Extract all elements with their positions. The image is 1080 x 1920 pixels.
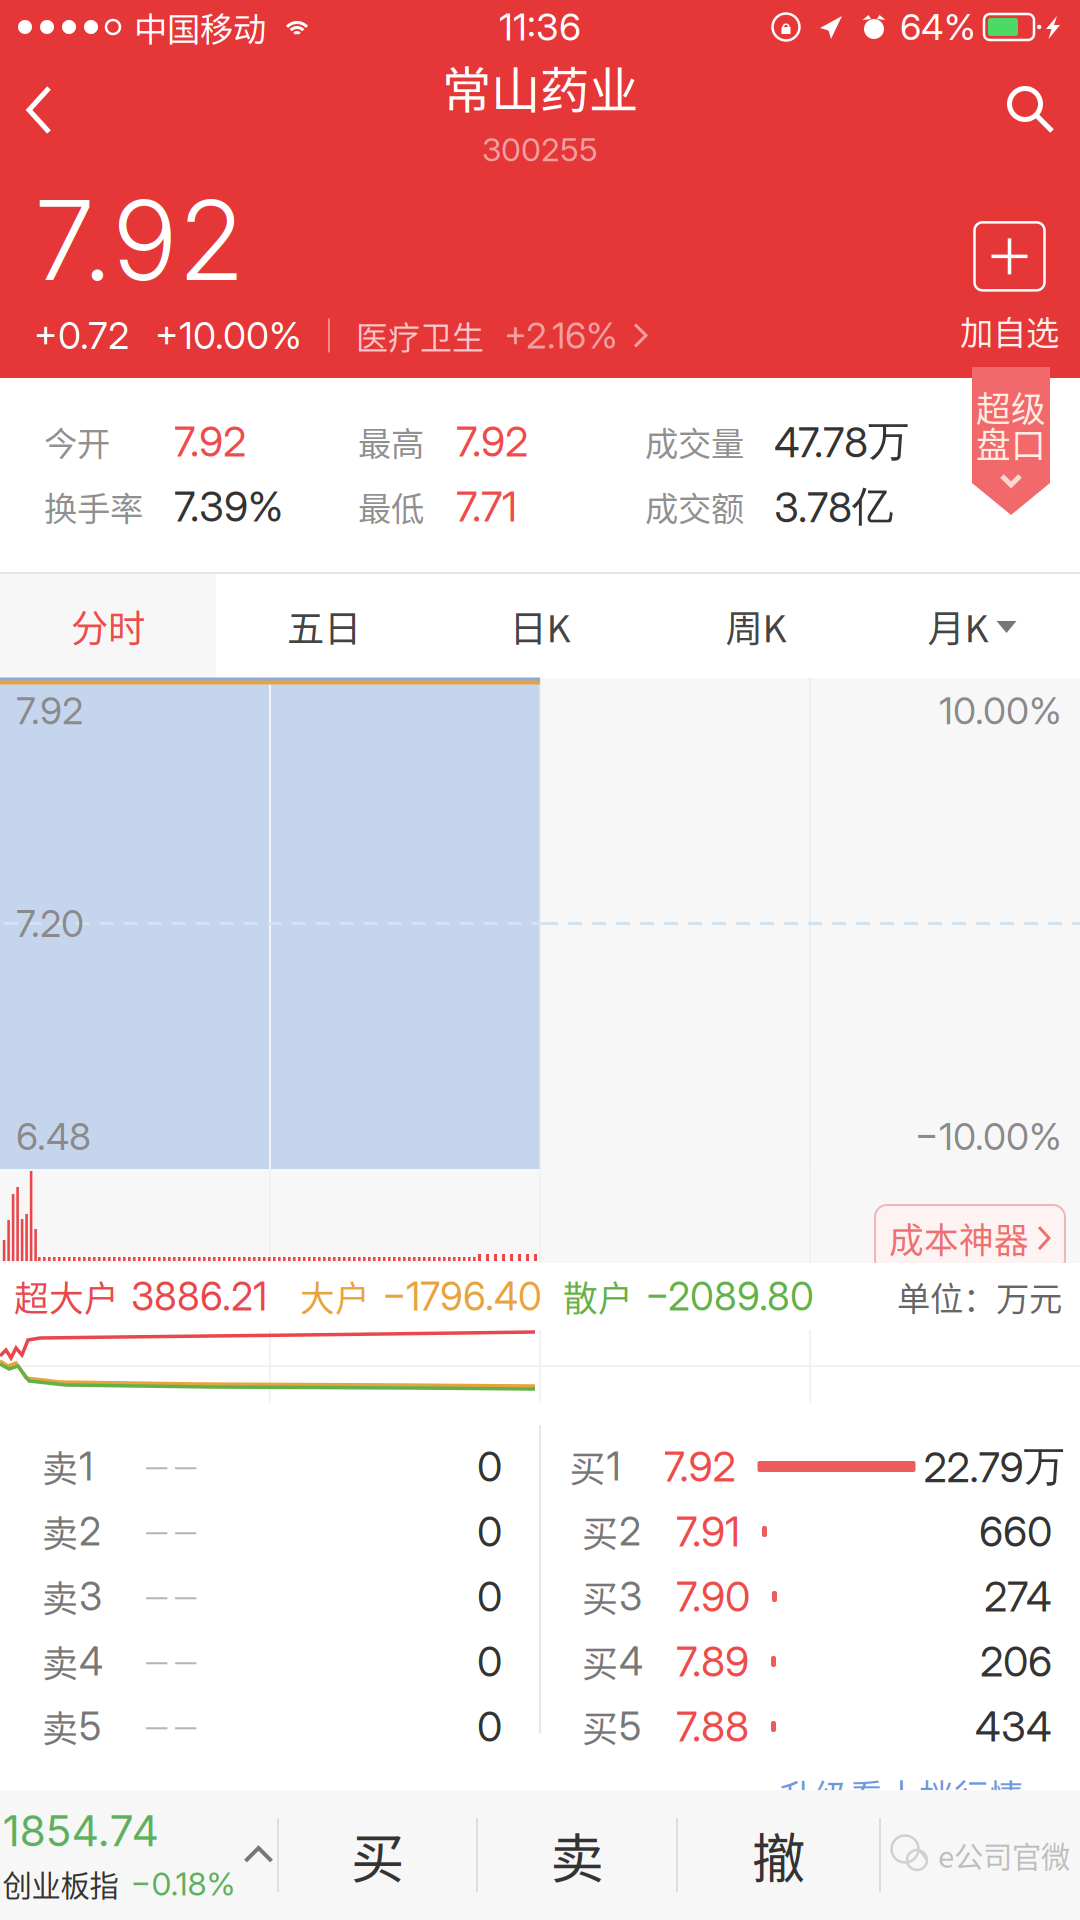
staticText: －－: [142, 1640, 200, 1683]
staticText: 换手率: [44, 482, 143, 531]
staticText: 7.92: [456, 416, 528, 466]
staticText: －－: [142, 1510, 200, 1553]
staticText: 3: [79, 1573, 102, 1620]
button[interactable]: 升级看十档行情: [779, 1770, 1080, 1820]
staticText: 中国移动: [134, 3, 266, 51]
staticText: －－: [142, 1575, 200, 1618]
staticText: 最高: [358, 417, 424, 466]
staticText: 7.92: [663, 1441, 735, 1491]
staticText: 买: [351, 1816, 404, 1894]
button[interactable]: 月K: [864, 574, 1080, 678]
button[interactable]: 五日: [216, 574, 432, 678]
staticText: 4: [619, 1638, 643, 1685]
staticText: 7.90: [676, 1571, 750, 1621]
staticText: 64%: [900, 5, 976, 49]
button[interactable]: 卖: [478, 1790, 676, 1920]
staticText: 大户: [300, 1271, 370, 1322]
button[interactable]: 日K: [432, 574, 648, 678]
button[interactable]: 加自选: [960, 222, 1059, 359]
staticText: 卖: [550, 1816, 603, 1894]
staticText: 1: [79, 1443, 93, 1490]
staticText: 0: [477, 1636, 502, 1686]
staticText: −10.00%: [915, 1114, 1062, 1159]
staticText: 月K: [927, 599, 988, 653]
staticText: +2.16%: [504, 314, 618, 357]
staticText: 0: [477, 1441, 502, 1491]
staticText: 5: [79, 1703, 101, 1750]
staticText: 单位：: [897, 1272, 996, 1321]
staticText: 22.79万: [923, 1440, 1064, 1493]
staticText: 7.88: [676, 1701, 749, 1751]
staticText: 加自选: [960, 306, 1059, 355]
staticText: 买: [582, 1635, 618, 1687]
staticText: 分时: [71, 599, 145, 653]
staticText: 卖: [42, 1505, 78, 1557]
staticText: 买: [582, 1570, 618, 1622]
staticText: 买: [582, 1505, 618, 1557]
button[interactable]: 撤: [678, 1790, 879, 1920]
staticText: 今开: [44, 417, 110, 466]
staticText: 7.92: [174, 416, 246, 466]
staticText: 6.48: [16, 1114, 91, 1159]
staticText: 7.91: [676, 1506, 740, 1556]
staticText: 3886.21: [131, 1273, 267, 1320]
button[interactable]: 买: [279, 1790, 476, 1920]
staticText: 撤: [752, 1816, 805, 1894]
staticText: 434: [975, 1701, 1052, 1751]
staticText: 成交额: [645, 482, 744, 531]
staticText: −2089.80: [645, 1273, 814, 1320]
staticText: +0.72: [34, 313, 129, 358]
staticText: 买: [569, 1440, 605, 1492]
staticText: −1796.40: [382, 1273, 542, 1320]
button[interactable]: 成本神器: [875, 1205, 1065, 1271]
staticText: 7.92: [34, 174, 245, 306]
staticText: +10.00%: [155, 313, 302, 358]
staticText: 4: [79, 1638, 103, 1685]
staticText: 274: [984, 1571, 1052, 1621]
staticText: 2: [619, 1508, 641, 1555]
staticText: 买: [582, 1700, 618, 1752]
staticText: 超级: [976, 382, 1046, 432]
button[interactable]: Back: [0, 67, 78, 153]
button[interactable]: Search: [982, 67, 1080, 153]
staticText: 五日: [287, 599, 361, 653]
staticText: 300255: [482, 130, 598, 169]
staticText: 最低: [358, 482, 424, 531]
staticText: 常山药业: [442, 51, 638, 122]
staticText: 7.92: [16, 688, 83, 733]
staticText: 医疗卫生: [356, 312, 484, 359]
staticText: 2: [79, 1508, 101, 1555]
staticText: 升级看十档行情: [779, 1770, 1024, 1820]
staticText: 创业板指: [2, 1863, 118, 1905]
staticText: 超大户: [14, 1271, 119, 1322]
staticText: 成交量: [645, 417, 744, 466]
staticText: 3.78亿: [774, 480, 893, 533]
staticText: 3: [619, 1573, 642, 1620]
staticText: 卖: [42, 1440, 78, 1492]
staticText: 7.20: [16, 901, 84, 946]
staticText: 0: [477, 1571, 502, 1621]
staticText: 7.89: [676, 1636, 749, 1686]
staticText: 660: [979, 1506, 1052, 1556]
staticText: 卖: [42, 1700, 78, 1752]
staticText: 盘口: [976, 418, 1046, 468]
button[interactable]: 1854.74: [0, 1790, 277, 1920]
staticText: 10.00%: [939, 688, 1062, 733]
staticText: 卖: [42, 1635, 78, 1687]
staticText: e公司官微: [938, 1834, 1070, 1876]
staticText: 周K: [725, 599, 786, 653]
staticText: 7.39%: [174, 481, 283, 531]
staticText: －－: [142, 1445, 200, 1488]
button[interactable]: 分时: [0, 574, 216, 678]
button[interactable]: 超级盘口: [972, 367, 1050, 515]
staticText: 万元: [996, 1272, 1062, 1321]
staticText: 日K: [509, 599, 570, 653]
staticText: 0: [477, 1701, 502, 1751]
staticText: 47.78万: [774, 415, 909, 468]
button[interactable]: 周K: [648, 574, 864, 678]
staticText: 成本神器: [889, 1213, 1029, 1263]
staticText: 1: [606, 1443, 620, 1490]
staticText: 1854.74: [2, 1805, 159, 1856]
staticText: 206: [980, 1636, 1052, 1686]
staticText: 7.71: [456, 481, 517, 531]
